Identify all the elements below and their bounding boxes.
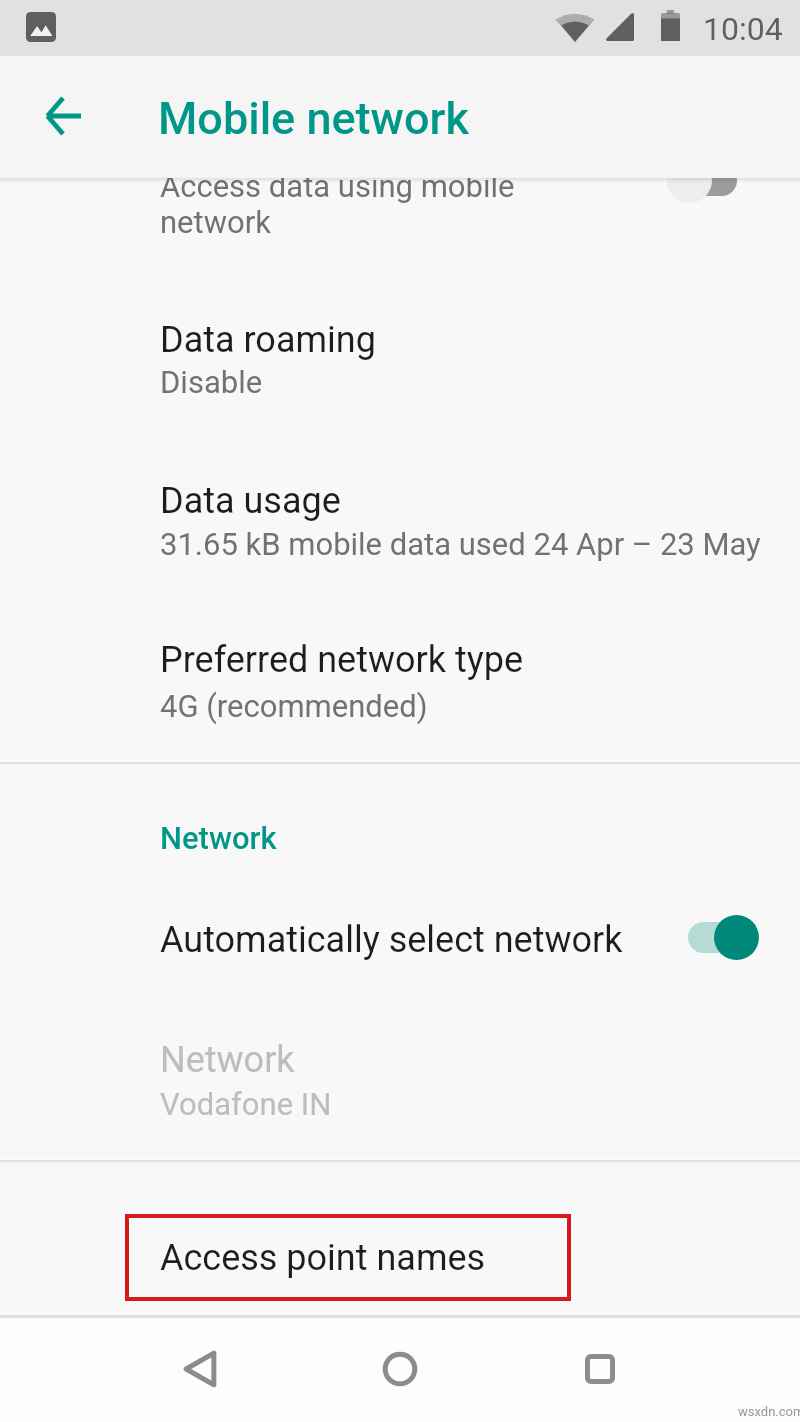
button[interactable]: Data usage <box>0 450 800 610</box>
staticText: Disable <box>160 364 263 400</box>
button[interactable]: Back <box>160 1329 240 1409</box>
staticText: Automatically select network <box>160 919 623 961</box>
button[interactable]: Automatically select network <box>0 880 800 998</box>
button[interactable]: Access point names <box>0 1180 800 1315</box>
staticText: Data roaming <box>160 319 376 361</box>
button[interactable]: Network <box>0 1010 800 1158</box>
button[interactable]: Access data using mobile <box>0 130 800 290</box>
staticText: wsxdn.com <box>738 1404 800 1419</box>
staticText: 31.65 kB mobile data used 24 Apr – 23 Ma… <box>160 526 761 562</box>
staticText: Network <box>160 820 277 856</box>
staticText: Preferred network type <box>160 639 524 681</box>
staticText: Access point names <box>160 1237 486 1279</box>
staticText: network <box>160 204 271 240</box>
button[interactable]: Navigate up <box>31 84 95 148</box>
staticText: Data usage <box>160 480 341 522</box>
staticText: Mobile network <box>158 92 469 145</box>
staticText: Access data using mobile <box>160 168 515 204</box>
other: Screenshot <box>26 12 56 42</box>
staticText: 10:04 <box>703 10 783 48</box>
staticText: Vodafone IN <box>160 1086 332 1122</box>
button[interactable]: Preferred network type <box>0 610 800 760</box>
staticText: 4G (recommended) <box>160 688 428 724</box>
button[interactable]: Home <box>360 1329 440 1409</box>
staticText: Network <box>160 1039 295 1081</box>
button[interactable]: Data roaming <box>0 290 800 450</box>
button[interactable]: Recents <box>560 1329 640 1409</box>
